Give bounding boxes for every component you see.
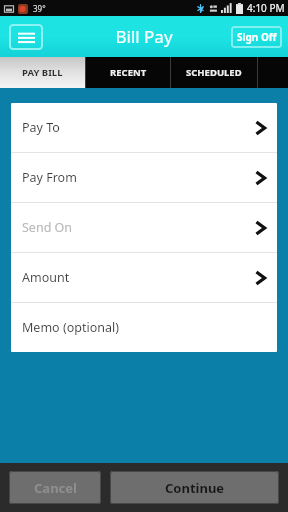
staticText: SCHEDULED: [186, 66, 242, 79]
button[interactable]: Pay From: [11, 153, 277, 202]
button[interactable]: RECENT: [86, 57, 170, 88]
staticText: Sign Off: [237, 30, 277, 44]
button[interactable]: Continue: [110, 471, 279, 504]
staticText: 39°: [33, 3, 46, 14]
button[interactable]: Amount: [11, 253, 277, 302]
button[interactable]: Memo (optional): [11, 303, 277, 352]
staticText: Send On: [22, 219, 73, 236]
button[interactable]: Cancel: [9, 471, 101, 504]
button[interactable]: Menu: [9, 24, 43, 50]
staticText: 4:10 PM: [247, 1, 285, 15]
staticText: Bill Pay: [115, 25, 173, 48]
staticText: Memo (optional): [22, 319, 119, 336]
button[interactable]: PAY BILL: [0, 57, 85, 88]
button[interactable]: SCHEDULED: [171, 57, 257, 88]
button[interactable]: Sign Off: [231, 26, 282, 48]
staticText: PAY BILL: [22, 66, 63, 79]
staticText: Continue: [165, 479, 225, 497]
staticText: Pay To: [22, 119, 60, 136]
button[interactable]: Pay To: [11, 103, 277, 152]
staticText: Amount: [22, 269, 70, 286]
staticText: Cancel: [34, 479, 77, 497]
button[interactable]: Send On: [11, 203, 277, 252]
staticText: Pay From: [22, 169, 77, 186]
staticText: RECENT: [110, 66, 147, 79]
